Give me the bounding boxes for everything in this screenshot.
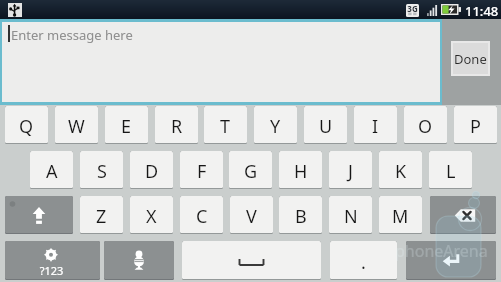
button[interactable]: C — [180, 196, 223, 234]
staticText: Z — [96, 204, 107, 229]
button[interactable]: E — [105, 106, 148, 144]
staticText: phoneArena — [395, 240, 488, 262]
button[interactable]: J — [329, 151, 372, 189]
staticText: X — [146, 204, 157, 229]
button[interactable]: X — [130, 196, 173, 234]
button[interactable]: U — [304, 106, 347, 144]
button[interactable]: D — [130, 151, 173, 189]
staticText: L — [446, 159, 456, 184]
other: USB connected — [8, 3, 22, 17]
staticText: H — [294, 159, 308, 184]
button[interactable]: Space — [182, 241, 321, 280]
staticText: W — [68, 114, 85, 139]
button[interactable]: R — [155, 106, 198, 144]
staticText: J — [348, 159, 353, 184]
button[interactable]: S — [80, 151, 123, 189]
staticText: Enter message here — [11, 26, 133, 44]
button[interactable]: . — [330, 241, 397, 280]
button[interactable]: Shift — [5, 196, 73, 234]
staticText: G — [244, 159, 258, 184]
button[interactable]: Z — [80, 196, 123, 234]
button[interactable]: Symbols — [5, 241, 100, 280]
staticText: K — [395, 159, 407, 184]
button[interactable]: I — [354, 106, 397, 144]
button[interactable]: Q — [5, 106, 48, 144]
button[interactable]: V — [230, 196, 273, 234]
staticText: B — [295, 204, 307, 229]
staticText: F — [197, 159, 207, 184]
staticText: 11:48 — [465, 2, 499, 20]
staticText: S — [97, 159, 107, 184]
button[interactable]: L — [429, 151, 472, 189]
button[interactable]: W — [55, 106, 98, 144]
button[interactable]: P — [454, 106, 497, 144]
staticText: 3G — [407, 3, 418, 14]
button[interactable]: K — [379, 151, 422, 189]
button[interactable]: F — [180, 151, 223, 189]
button[interactable]: B — [279, 196, 322, 234]
button[interactable]: H — [279, 151, 322, 189]
staticText: Y — [270, 114, 281, 139]
button[interactable]: Enter — [406, 241, 496, 280]
staticText: A — [46, 159, 58, 184]
button[interactable]: O — [404, 106, 447, 144]
staticText: R — [171, 114, 183, 139]
button[interactable]: M — [379, 196, 422, 234]
button[interactable]: N — [329, 196, 372, 234]
staticText: C — [196, 204, 208, 229]
staticText: I — [372, 114, 379, 139]
staticText: O — [418, 114, 433, 139]
button[interactable]: Done — [453, 43, 488, 74]
staticText: ?123 — [5, 263, 99, 278]
staticText: Q — [19, 114, 34, 139]
staticText: E — [121, 114, 132, 139]
staticText: U — [319, 114, 333, 139]
staticText: V — [246, 204, 257, 229]
button[interactable]: G — [229, 151, 272, 189]
staticText: D — [145, 159, 159, 184]
button[interactable]: A — [30, 151, 73, 189]
staticText: P — [470, 114, 481, 139]
button[interactable]: Y — [254, 106, 297, 144]
staticText: . — [361, 250, 366, 275]
button[interactable]: Enter message here — [0, 19, 442, 105]
staticText: N — [344, 204, 358, 229]
staticText: Done — [454, 50, 487, 68]
staticText: T — [220, 114, 231, 139]
button[interactable]: T — [204, 106, 247, 144]
button[interactable]: Backspace — [430, 196, 496, 234]
staticText: M — [392, 204, 409, 229]
button[interactable]: Voice input — [104, 241, 174, 280]
